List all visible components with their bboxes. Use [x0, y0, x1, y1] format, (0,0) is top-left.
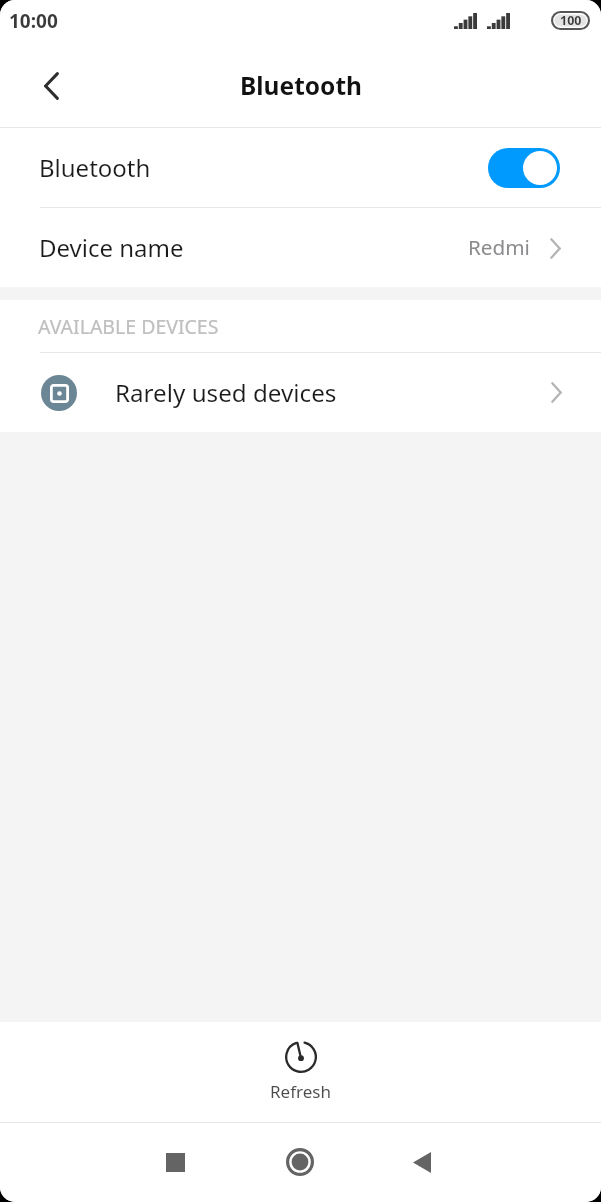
button[interactable]: Device name: [0, 208, 601, 287]
button[interactable]: Rarely used devices: [0, 353, 601, 432]
button[interactable]: Recents: [145, 1132, 205, 1192]
staticText: Device name: [39, 231, 184, 264]
staticText: Bluetooth: [240, 69, 362, 102]
staticText: Rarely used devices: [115, 376, 337, 409]
button[interactable]: Home: [270, 1132, 330, 1192]
button[interactable]: Back: [17, 52, 86, 128]
staticText: 100: [560, 12, 582, 29]
button[interactable]: Refresh: [0, 1022, 601, 1122]
staticText: AVAILABLE DEVICES: [38, 313, 219, 340]
staticText: Bluetooth: [39, 151, 151, 184]
button[interactable]: Bluetooth: [0, 128, 601, 207]
staticText: 10:00: [9, 8, 58, 34]
staticText: Refresh: [270, 1080, 331, 1103]
staticText: Redmi: [468, 233, 530, 261]
button[interactable]: Back: [392, 1132, 452, 1192]
button[interactable]: Bluetooth on: [488, 148, 560, 188]
